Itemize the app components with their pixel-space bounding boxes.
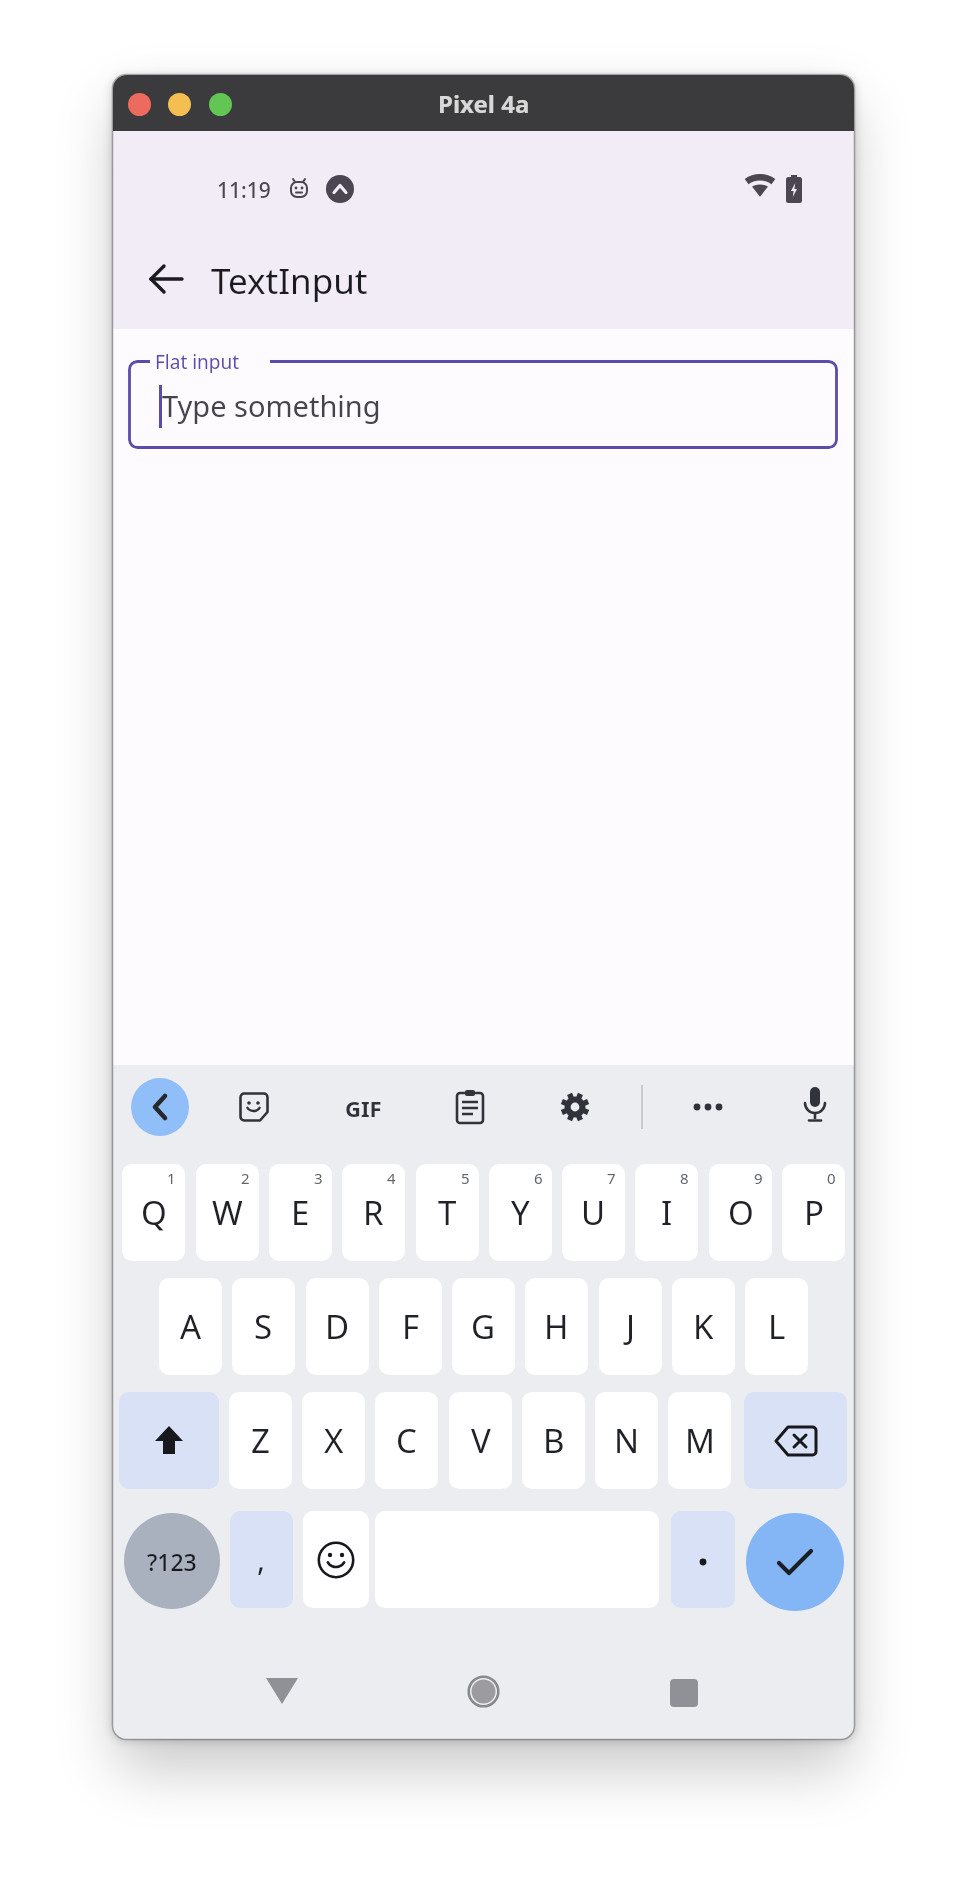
staticText: 3 [314, 1168, 323, 1188]
staticText: J [626, 1304, 636, 1349]
staticText: W [212, 1190, 243, 1235]
button[interactable]: L [745, 1278, 808, 1375]
button[interactable] [119, 1392, 219, 1489]
staticText: 7 [607, 1168, 616, 1188]
button[interactable]: A [159, 1278, 222, 1375]
button[interactable]: E [269, 1164, 332, 1261]
button[interactable]: C [375, 1392, 438, 1489]
button[interactable] [686, 1099, 730, 1115]
staticText: H [544, 1304, 569, 1349]
staticText: R [363, 1190, 384, 1235]
button[interactable]: F [379, 1278, 442, 1375]
button[interactable]: S [232, 1278, 295, 1375]
staticText: 0 [827, 1168, 836, 1188]
button[interactable]: GIF [338, 1093, 388, 1121]
button[interactable]: P [782, 1164, 845, 1261]
staticText: GIF [345, 1093, 382, 1121]
button[interactable] [801, 1085, 829, 1127]
button[interactable]: H [525, 1278, 588, 1375]
button[interactable]: D [306, 1278, 369, 1375]
button[interactable] [467, 1675, 500, 1708]
staticText: 5 [461, 1168, 470, 1188]
staticText: Flat input [155, 349, 240, 373]
button[interactable]: B [522, 1392, 585, 1489]
button[interactable]: W [196, 1164, 259, 1261]
staticText: Type something [162, 386, 381, 425]
button[interactable] [149, 261, 185, 297]
staticText: 9 [754, 1168, 763, 1188]
staticText: L [768, 1304, 786, 1349]
staticText: N [614, 1418, 640, 1463]
staticText: Q [141, 1190, 167, 1235]
button[interactable]: V [449, 1392, 512, 1489]
button[interactable]: T [416, 1164, 479, 1261]
staticText: 6 [534, 1168, 543, 1188]
staticText: K [693, 1304, 714, 1349]
button[interactable] [303, 1511, 369, 1608]
staticText: Y [511, 1190, 530, 1235]
staticText: 4 [387, 1168, 396, 1188]
button[interactable] [559, 1091, 591, 1123]
staticText: S [254, 1304, 273, 1349]
staticText: O [728, 1190, 754, 1235]
staticText: T [438, 1190, 457, 1235]
button[interactable]: Q [122, 1164, 185, 1261]
button[interactable]: Type something [128, 360, 838, 449]
staticText: E [291, 1190, 310, 1235]
button[interactable] [265, 1677, 299, 1705]
button[interactable]: M [668, 1392, 731, 1489]
staticText: U [581, 1190, 606, 1235]
button[interactable]: U [562, 1164, 625, 1261]
button[interactable] [168, 93, 191, 116]
button[interactable]: X [302, 1392, 365, 1489]
staticText: , [257, 1539, 266, 1580]
staticText: B [543, 1418, 565, 1463]
button[interactable] [455, 1089, 485, 1125]
staticText: G [471, 1304, 496, 1349]
button[interactable]: I [635, 1164, 698, 1261]
staticText: P [804, 1190, 824, 1235]
button[interactable] [131, 1078, 189, 1136]
staticText: 2 [241, 1168, 250, 1188]
button[interactable] [746, 1513, 844, 1611]
staticText: Z [251, 1418, 270, 1463]
button[interactable] [744, 1392, 847, 1489]
button[interactable]: O [709, 1164, 772, 1261]
button[interactable]: R [342, 1164, 405, 1261]
button[interactable]: Z [229, 1392, 292, 1489]
button[interactable]: N [595, 1392, 658, 1489]
staticText: I [661, 1190, 673, 1235]
button[interactable] [670, 1679, 698, 1707]
button[interactable]: K [672, 1278, 735, 1375]
staticText: F [402, 1304, 420, 1349]
staticText: 11:19 [217, 176, 271, 202]
staticText: A [180, 1304, 202, 1349]
button[interactable]: G [452, 1278, 515, 1375]
button[interactable] [209, 93, 232, 116]
staticText: X [324, 1418, 344, 1463]
button[interactable]: Y [489, 1164, 552, 1261]
button[interactable]: , [230, 1511, 293, 1608]
staticText: M [685, 1418, 715, 1463]
staticText: C [396, 1418, 417, 1463]
button[interactable]: J [599, 1278, 662, 1375]
staticText: V [471, 1418, 491, 1463]
staticText: ?123 [147, 1546, 197, 1577]
staticText: TextInput [211, 257, 368, 303]
staticText: 8 [680, 1168, 689, 1188]
button[interactable]: ?123 [124, 1513, 220, 1609]
button[interactable] [238, 1091, 270, 1123]
staticText: 1 [167, 1168, 176, 1188]
staticText: Pixel 4a [438, 87, 530, 120]
staticText: D [325, 1304, 350, 1349]
button[interactable] [128, 93, 151, 116]
button[interactable] [671, 1511, 735, 1608]
